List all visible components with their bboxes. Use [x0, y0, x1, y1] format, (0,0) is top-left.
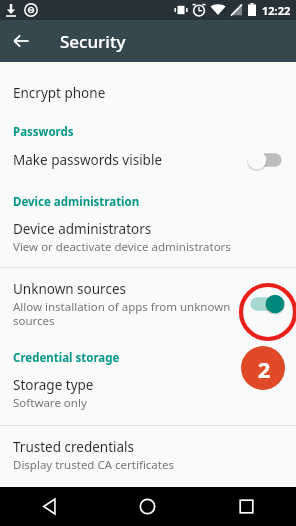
button[interactable]: Toggle off	[246, 147, 286, 173]
staticText: Storage type	[13, 376, 94, 394]
staticText: Unknown sources	[13, 280, 126, 298]
button[interactable]: Device administrators	[0, 210, 296, 267]
staticText: Credential storage	[13, 350, 296, 366]
button[interactable]: Unknown sources	[0, 268, 296, 338]
button[interactable]: Recent apps	[197, 487, 296, 526]
staticText: Encrypt phone	[13, 84, 106, 102]
button[interactable]: Trusted credentials	[0, 426, 296, 483]
button[interactable]: Make passwords visible	[0, 140, 296, 180]
staticText: Allow installation of apps from unknown …	[13, 299, 240, 328]
staticText: View or deactivate device administrators	[13, 239, 231, 255]
button[interactable]: Back	[0, 487, 98, 526]
button[interactable]: Storage type	[0, 366, 296, 425]
staticText: Display trusted CA certificates	[13, 457, 174, 473]
staticText: 12:22	[262, 3, 291, 18]
button[interactable]: Encrypt phone	[0, 64, 296, 116]
button[interactable]: Home	[98, 487, 197, 526]
staticText: Device administration	[13, 194, 296, 210]
staticText: 2	[255, 354, 273, 384]
staticText: Passwords	[13, 124, 296, 140]
staticText: Security	[60, 30, 126, 53]
staticText: Trusted credentials	[13, 438, 135, 456]
button[interactable]: Toggle on	[246, 291, 286, 317]
staticText: Software only	[13, 395, 87, 411]
button[interactable]: Navigate up	[0, 20, 42, 62]
staticText: Make passwords visible	[13, 151, 163, 169]
staticText: Device administrators	[13, 220, 152, 238]
